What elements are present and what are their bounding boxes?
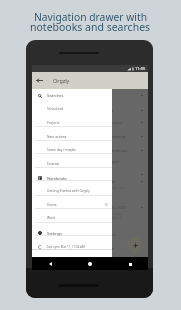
staticText: -menu [112, 120, 141, 125]
button[interactable]: Notebooks [32, 171, 112, 185]
button[interactable]: Recent apps [125, 259, 135, 269]
button[interactable]: New note [127, 237, 143, 253]
staticText: r; status ludes le [112, 212, 123, 220]
staticText: Orgzly [53, 77, 70, 84]
button[interactable]: Home [85, 259, 95, 269]
button[interactable]: Scheduled [32, 102, 112, 115]
button[interactable]: Errands [32, 156, 112, 170]
button[interactable]: Projects [32, 115, 112, 129]
button[interactable]: Last sync: Mar 11, 11:04 AM [32, 240, 112, 254]
staticText: Searches [47, 93, 112, 98]
staticText: e [112, 246, 148, 251]
staticText: Some day / maybe [47, 147, 112, 152]
staticText: Errands [47, 161, 112, 166]
staticText: Home [47, 202, 105, 207]
staticText: 11:05 [135, 66, 146, 71]
button[interactable]: Home [32, 197, 112, 211]
button[interactable]: Getting Started with Orgzly [32, 183, 112, 197]
staticText: notes by [112, 134, 141, 139]
staticText: levels you [112, 148, 141, 153]
staticText: h a TODO [112, 205, 141, 210]
staticText: Getting Started with Orgzly [47, 188, 112, 193]
button[interactable]: Settings [32, 226, 112, 240]
staticText: notebooks and searches [30, 20, 151, 34]
button[interactable]: Some day / maybe [32, 142, 112, 156]
staticText: Work [47, 215, 112, 220]
staticText: Next actions [47, 134, 112, 139]
staticText: Navigation drawer with [34, 10, 148, 24]
staticText: Projects [47, 120, 112, 125]
staticText: Settings [47, 231, 112, 236]
button[interactable]: Next actions [32, 129, 112, 143]
button[interactable]: Navigate up [32, 72, 47, 89]
button[interactable]: Back [45, 259, 55, 269]
staticText: Last sync: Mar 11, 11:04 AM [47, 245, 112, 249]
staticText: your [112, 159, 148, 164]
staticText: Notebooks [47, 176, 112, 181]
staticText: Scheduled [47, 106, 112, 111]
button[interactable]: Searches [32, 89, 112, 102]
button[interactable]: Work [32, 210, 112, 224]
